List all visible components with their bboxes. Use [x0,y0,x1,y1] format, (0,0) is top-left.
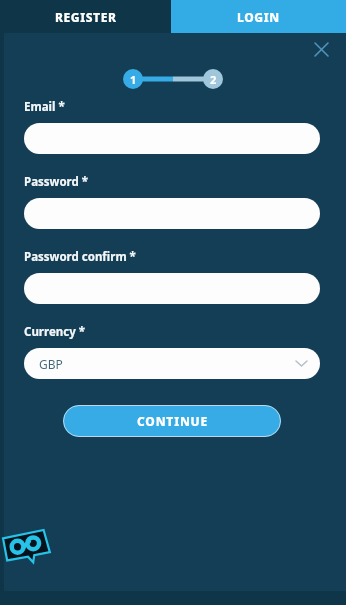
button[interactable]: 1 [123,69,143,89]
staticText: LOGIN [237,9,280,25]
button[interactable]: REGISTER [0,0,171,33]
staticText: CONTINUE [137,413,208,429]
staticText: 2 [210,72,217,87]
staticText: Password confirm * [24,249,136,265]
button[interactable]: GBP [24,348,320,379]
button[interactable]: 2 [203,69,223,89]
button[interactable] [24,123,320,154]
staticText: Email * [24,99,65,115]
button[interactable] [24,273,320,304]
staticText: Currency * [24,324,85,340]
button[interactable]: Close [310,38,332,60]
button[interactable]: LOGIN [171,0,346,33]
button[interactable] [24,198,320,229]
button[interactable]: CONTINUE [63,405,281,437]
staticText: REGISTER [55,9,117,25]
button[interactable]: App logo [2,527,54,565]
staticText: 1 [130,72,137,87]
staticText: GBP [39,356,63,372]
staticText: Password * [24,174,89,190]
